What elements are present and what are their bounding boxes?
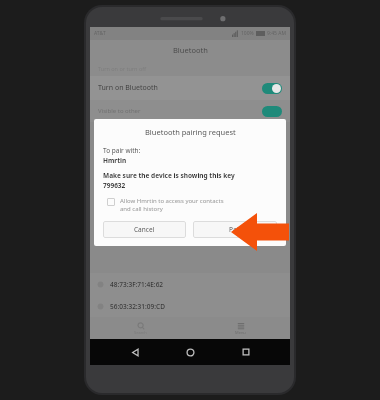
staticText: 56:03:32:31:09:CD: [110, 302, 165, 311]
staticText: Menu: [235, 330, 246, 335]
staticText: 100%: [241, 30, 254, 37]
button[interactable]: Visible to other: [90, 100, 290, 122]
button[interactable]: Pair: [193, 221, 277, 238]
staticText: Bluetooth: [173, 45, 208, 55]
button[interactable]: Allow Hmrtin to access your contacts: [103, 197, 277, 213]
staticText: To pair with:: [103, 146, 141, 155]
staticText: and call history: [120, 205, 163, 213]
staticText: Allow Hmrtin to access your contacts: [120, 197, 224, 205]
staticText: Hmrtin: [103, 156, 127, 165]
staticText: 48:73:3F:71:4E:62: [110, 280, 164, 289]
staticText: 9:45 AM: [267, 30, 286, 37]
staticText: Bluetooth pairing request: [145, 127, 236, 137]
staticText: Visible to other: [98, 107, 141, 115]
staticText: Cancel: [134, 225, 155, 234]
button[interactable]: Recent apps: [235, 341, 257, 363]
staticText: Pair: [229, 225, 241, 234]
button[interactable]: 48:73:3F:71:4E:62: [90, 273, 290, 295]
button[interactable]: 56:03:32:31:09:CD: [90, 295, 290, 317]
staticText: Turn on Bluetooth: [98, 83, 158, 93]
staticText: Turn on or turn off: [98, 65, 147, 72]
staticText: Search: [134, 330, 147, 335]
staticText: Make sure the device is showing this key: [103, 171, 235, 180]
staticText: 799632: [103, 181, 126, 190]
button[interactable]: Cancel: [103, 221, 186, 238]
button[interactable]: Back: [124, 341, 146, 363]
button[interactable]: Home: [179, 341, 201, 363]
button[interactable]: Turn on Bluetooth: [90, 76, 290, 100]
staticText: AT&T: [94, 30, 106, 37]
